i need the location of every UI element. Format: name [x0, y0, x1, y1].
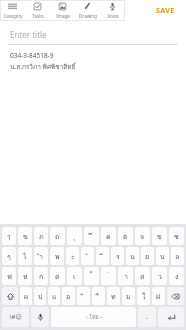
button[interactable]: พ	[50, 247, 64, 265]
button[interactable]: Voice input	[31, 307, 49, 327]
staticText: ผ	[24, 291, 29, 302]
staticText: Enter title	[10, 29, 47, 40]
button[interactable]: ก	[34, 267, 48, 285]
button[interactable]: ้	[84, 267, 99, 285]
button[interactable]: ด	[50, 267, 65, 285]
button[interactable]: า	[118, 267, 133, 285]
button[interactable]: ท	[107, 287, 120, 305]
staticText: อ	[66, 291, 71, 302]
button[interactable]: ใ	[137, 287, 150, 305]
button[interactable]: Voice	[100, 0, 125, 21]
button[interactable]: ่	[101, 267, 116, 285]
button[interactable]: ค	[101, 227, 116, 245]
staticText: ำ	[39, 251, 43, 262]
button[interactable]: ช	[169, 227, 184, 245]
button[interactable]: ฝ	[152, 287, 165, 305]
button[interactable]: !#☺	[2, 307, 29, 327]
button[interactable]: Drawing	[75, 0, 100, 21]
staticText: ว	[158, 271, 162, 282]
staticText: ฝ	[156, 291, 161, 302]
button[interactable]: ำ	[34, 247, 48, 265]
staticText: Drawing	[79, 13, 97, 19]
staticText: ม	[126, 291, 131, 302]
button[interactable]: ข	[18, 227, 32, 245]
button[interactable]: อ	[62, 287, 75, 305]
button[interactable]: ั	[81, 247, 94, 265]
button[interactable]: ื	[92, 287, 105, 305]
button[interactable]: ง	[169, 267, 184, 285]
staticText: ค	[106, 231, 111, 242]
button[interactable]: ป	[34, 287, 46, 305]
button[interactable]: เ	[67, 267, 82, 285]
button[interactable]: Enter title	[0, 29, 186, 44]
button[interactable]: SAVE	[153, 4, 178, 18]
staticText: พ	[55, 251, 60, 262]
other: Voice	[108, 2, 117, 11]
button[interactable]: Category	[0, 0, 25, 21]
button[interactable]: ย	[141, 247, 154, 265]
button[interactable]: ิ	[77, 287, 90, 305]
staticText: ช	[174, 231, 179, 242]
button[interactable]: ร	[111, 247, 124, 265]
other: Drawing	[83, 2, 92, 11]
button[interactable]: ม	[122, 287, 135, 305]
staticText: ะ	[71, 251, 75, 262]
button[interactable]: ข	[152, 227, 167, 245]
staticText: ข	[157, 231, 162, 242]
button[interactable]: ึ	[84, 227, 99, 245]
staticText: จ	[140, 231, 145, 242]
button[interactable]: ส	[135, 267, 150, 285]
button[interactable]: ‹ ไทย ›	[51, 307, 136, 327]
button[interactable]: Image	[50, 0, 75, 21]
staticText: ๆ	[7, 251, 11, 262]
button[interactable]: ไ	[18, 247, 32, 265]
button[interactable]: ี	[96, 247, 109, 265]
button[interactable]: Enter	[158, 307, 184, 327]
button[interactable]: Backspace	[167, 287, 184, 305]
button[interactable]: ๆ	[2, 247, 16, 265]
staticText: Voice	[107, 13, 119, 19]
button[interactable]: ห	[18, 267, 32, 285]
staticText: ป	[38, 291, 43, 302]
staticText: .	[146, 312, 148, 322]
staticText: SAVE	[156, 6, 175, 16]
staticText: ถ	[55, 231, 60, 242]
button[interactable]: ถ	[50, 227, 65, 245]
button[interactable]: ุ	[67, 227, 82, 245]
staticText: ต	[123, 231, 128, 242]
button[interactable]: ต	[118, 227, 133, 245]
button[interactable]: Tasks	[25, 0, 50, 21]
button[interactable]: 034-3-84518-9	[0, 51, 186, 72]
button[interactable]: น	[126, 247, 139, 265]
staticText: ใ	[142, 291, 146, 302]
staticText: ‹ ไทย ›	[86, 313, 102, 322]
button[interactable]: ฟ	[2, 267, 16, 285]
button[interactable]: .	[138, 307, 156, 327]
staticText: ห	[23, 271, 28, 282]
staticText: น	[130, 251, 135, 262]
button[interactable]: Shift	[2, 287, 18, 305]
staticText: 034-3-84518-9	[10, 51, 54, 60]
button[interactable]: ว	[152, 267, 167, 285]
button[interactable]: บ	[156, 247, 169, 265]
staticText: ท	[111, 291, 116, 302]
staticText: !#☺	[10, 313, 22, 321]
button[interactable]: จ	[135, 227, 150, 245]
button[interactable]: ผ	[20, 287, 32, 305]
staticText: บ	[160, 251, 165, 262]
button[interactable]: ภ	[34, 227, 48, 245]
staticText: ด	[55, 271, 60, 282]
staticText: า	[124, 271, 128, 282]
staticText: แ	[52, 291, 57, 302]
other: Category	[8, 2, 17, 11]
staticText: ก	[39, 271, 44, 282]
staticText: ฟ	[7, 271, 12, 282]
staticText: ย	[145, 251, 150, 262]
button[interactable]: ๅ	[2, 227, 16, 245]
other: Tasks	[33, 2, 42, 11]
staticText: น.ส.กรวิภา พิศพิชาสิทธิ์	[10, 62, 76, 72]
button[interactable]: แ	[48, 287, 60, 305]
button[interactable]: ล	[171, 247, 184, 265]
button[interactable]: ะ	[66, 247, 79, 265]
staticText: ล	[175, 251, 180, 262]
